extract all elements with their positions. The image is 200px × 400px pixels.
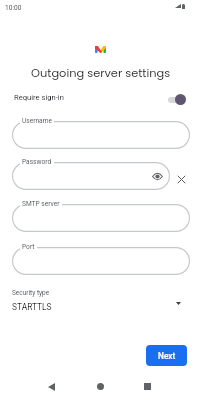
- button[interactable]: [168, 94, 185, 105]
- button[interactable]: Back: [40, 375, 63, 398]
- button[interactable]: Security type: [0, 286, 200, 314]
- staticText: Next: [158, 351, 176, 361]
- staticText: Port: [22, 243, 35, 251]
- button[interactable]: Show password: [150, 169, 164, 183]
- button[interactable]: Password: [12, 162, 170, 190]
- staticText: Require sign-in: [14, 93, 64, 102]
- staticText: Password: [22, 158, 52, 166]
- button[interactable]: Home: [89, 375, 112, 398]
- button[interactable]: Port: [12, 247, 190, 275]
- staticText: SMTP server: [22, 200, 60, 208]
- button[interactable]: Require sign-in: [0, 89, 200, 109]
- button[interactable]: Username: [12, 121, 190, 149]
- button[interactable]: SMTP server: [12, 204, 190, 232]
- staticText: STARTTLS: [12, 302, 52, 312]
- button[interactable]: Clear: [175, 173, 187, 185]
- staticText: Outgoing server settings: [31, 65, 171, 81]
- button[interactable]: Recent apps: [136, 375, 159, 398]
- button[interactable]: Next: [146, 345, 187, 366]
- staticText: Security type: [12, 289, 50, 297]
- staticText: 10:00: [5, 4, 22, 12]
- staticText: Username: [22, 117, 52, 125]
